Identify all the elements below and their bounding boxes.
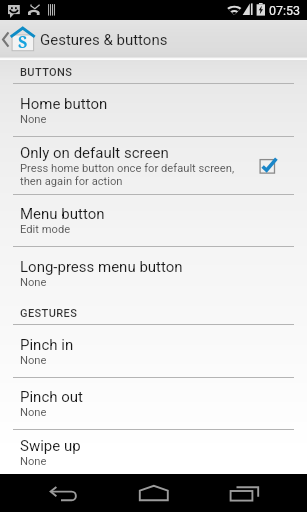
button[interactable]: Only on default screen checkbox <box>247 137 307 194</box>
staticText: S <box>18 31 28 53</box>
staticText: None <box>20 354 47 367</box>
staticText: 07:53 <box>269 3 301 18</box>
button[interactable]: Swipe up <box>0 430 307 474</box>
staticText: Only on default screen <box>20 144 169 162</box>
staticText: Press home button once for default scree… <box>20 162 235 188</box>
button[interactable]: Navigate up <box>0 20 36 57</box>
button[interactable]: Long-press menu button <box>0 247 307 299</box>
button[interactable]: Pinch in <box>0 325 307 377</box>
staticText: None <box>20 113 47 126</box>
staticText: Edit mode <box>20 223 71 236</box>
staticText: Pinch in <box>20 336 74 354</box>
staticText: GESTURES <box>20 307 78 320</box>
button[interactable]: Only on default screen <box>0 137 247 194</box>
staticText: Home button <box>20 95 108 113</box>
staticText: Pinch out <box>20 388 83 406</box>
button[interactable]: Pinch out <box>0 378 307 429</box>
staticText: Long-press menu button <box>20 258 183 276</box>
staticText: None <box>20 455 47 468</box>
staticText: Gestures & buttons <box>40 31 168 49</box>
staticText: None <box>20 406 47 419</box>
staticText: None <box>20 276 47 289</box>
button[interactable]: Home button <box>0 84 307 136</box>
button[interactable]: Home <box>131 474 177 512</box>
staticText: BUTTONS <box>20 66 73 79</box>
button[interactable]: Recent apps <box>222 474 268 512</box>
staticText: Swipe up <box>20 437 81 455</box>
button[interactable]: Menu button <box>0 195 307 246</box>
button[interactable]: Back <box>40 474 86 512</box>
staticText: Menu button <box>20 205 105 223</box>
